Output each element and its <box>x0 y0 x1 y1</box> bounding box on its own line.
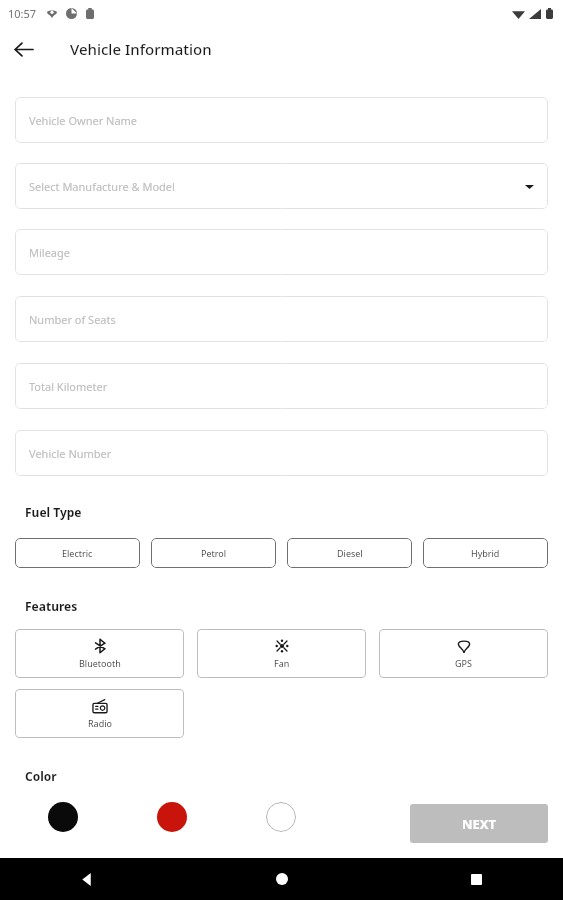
button[interactable]: Red <box>157 802 187 832</box>
staticText: Vehicle Information <box>70 39 212 59</box>
staticText: Petrol <box>201 547 227 559</box>
button[interactable]: Radio <box>15 689 184 738</box>
staticText: Fan <box>274 657 290 669</box>
button[interactable]: Hybrid <box>423 538 548 568</box>
button[interactable]: Electric <box>15 538 140 568</box>
staticText: Features <box>25 598 78 614</box>
button[interactable]: Total Kilometer <box>15 363 548 409</box>
button[interactable]: Petrol <box>151 538 276 568</box>
staticText: Vehicle Owner Name <box>29 113 138 128</box>
staticText: Mileage <box>29 245 70 260</box>
button[interactable]: Vehicle Number <box>15 430 548 476</box>
staticText: Vehicle Number <box>29 446 112 461</box>
staticText: Hybrid <box>471 547 500 559</box>
staticText: Electric <box>62 547 93 559</box>
staticText: 10:57 <box>8 6 37 21</box>
staticText: Bluetooth <box>79 657 121 669</box>
staticText: NEXT <box>462 815 497 833</box>
button[interactable]: Bluetooth <box>15 629 184 678</box>
button[interactable]: GPS <box>379 629 548 678</box>
staticText: Fuel Type <box>25 504 82 520</box>
button[interactable]: Back <box>0 26 46 72</box>
staticText: Diesel <box>337 547 363 559</box>
button[interactable]: Vehicle Owner Name <box>15 97 548 143</box>
staticText: GPS <box>455 657 472 669</box>
button[interactable]: Home <box>265 862 299 896</box>
button[interactable]: Back <box>70 862 104 896</box>
staticText: Total Kilometer <box>29 379 108 394</box>
staticText: Select Manufacture & Model <box>29 179 175 194</box>
button[interactable]: Mileage <box>15 229 548 275</box>
button[interactable]: Black <box>48 802 78 832</box>
button[interactable]: Select Manufacture & Model <box>15 163 548 209</box>
button[interactable]: Fan <box>197 629 366 678</box>
button[interactable]: White <box>266 802 296 832</box>
staticText: Color <box>25 768 57 784</box>
button[interactable]: Recents <box>459 862 493 896</box>
button[interactable]: Number of Seats <box>15 296 548 342</box>
staticText: Radio <box>88 717 112 729</box>
button[interactable]: NEXT <box>410 804 548 843</box>
staticText: Number of Seats <box>29 312 116 327</box>
button[interactable]: Diesel <box>287 538 412 568</box>
